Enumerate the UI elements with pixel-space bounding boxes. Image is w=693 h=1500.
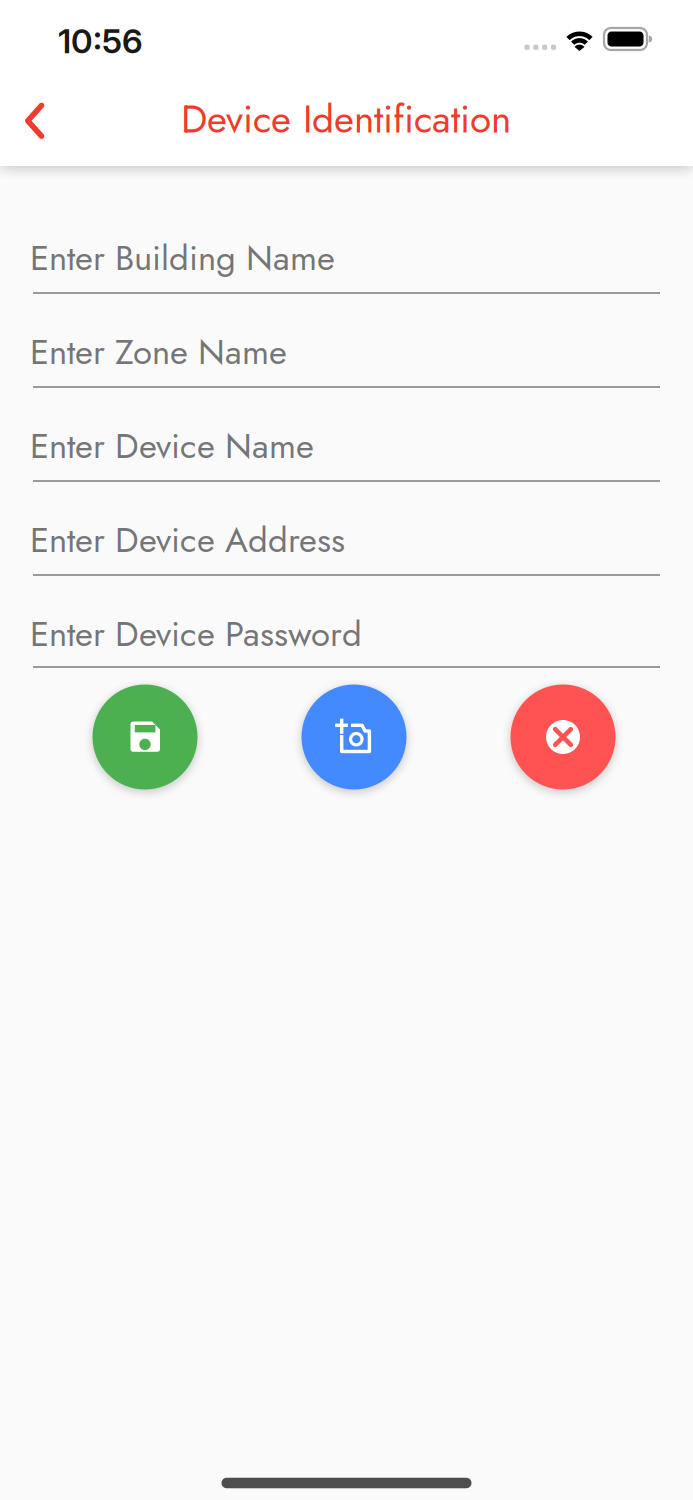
- staticText: Enter Zone Name: [30, 327, 287, 377]
- staticText: Enter Device Name: [30, 421, 314, 471]
- staticText: 10:56: [58, 21, 143, 61]
- button[interactable]: Save: [92, 684, 197, 789]
- button[interactable]: Cancel: [510, 684, 615, 789]
- staticText: Enter Device Address: [30, 515, 345, 565]
- staticText: Enter Device Password: [30, 609, 362, 659]
- staticText: Enter Building Name: [30, 233, 335, 283]
- button[interactable]: Add photo: [301, 684, 406, 789]
- staticText: Device Identification: [181, 91, 511, 147]
- button[interactable]: Back: [5, 86, 65, 156]
